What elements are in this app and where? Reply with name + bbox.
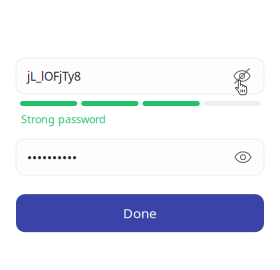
staticText: •••••••••• (27, 148, 77, 166)
staticText: jL_lOFjTy8 (27, 68, 81, 84)
button[interactable]: Show password (229, 143, 257, 171)
button[interactable]: Done (16, 194, 264, 232)
staticText: Strong password (21, 112, 106, 126)
staticText: Done (123, 204, 157, 222)
button[interactable]: Hide password (227, 61, 257, 91)
